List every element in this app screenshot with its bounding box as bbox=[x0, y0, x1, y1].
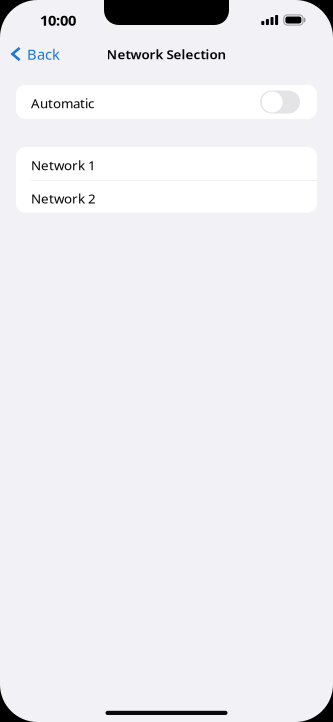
staticText: Network Selection bbox=[106, 45, 226, 63]
staticText: Network 1 bbox=[31, 156, 96, 174]
staticText: Network 2 bbox=[31, 189, 96, 207]
staticText: 10:00 bbox=[40, 10, 76, 30]
button[interactable]: Automatic bbox=[16, 85, 317, 119]
staticText: Back bbox=[27, 44, 60, 64]
button[interactable]: Network 1 bbox=[16, 147, 317, 180]
button[interactable]: Back bbox=[0, 38, 70, 70]
staticText: Automatic bbox=[31, 94, 94, 112]
button[interactable]: Network 2 bbox=[16, 181, 317, 213]
